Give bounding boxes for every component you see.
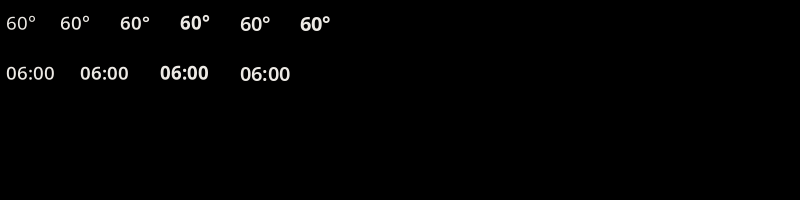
staticText: 06:00 xyxy=(80,60,129,85)
staticText: 60° xyxy=(300,10,330,37)
staticText: 06:00 xyxy=(6,60,55,85)
staticText: 60° xyxy=(120,10,150,35)
staticText: 06:00 xyxy=(240,60,290,87)
staticText: 06:00 xyxy=(160,60,209,85)
staticText: 60° xyxy=(240,10,271,37)
staticText: 60° xyxy=(6,10,36,35)
staticText: 60° xyxy=(60,10,90,35)
staticText: 60° xyxy=(180,10,210,35)
